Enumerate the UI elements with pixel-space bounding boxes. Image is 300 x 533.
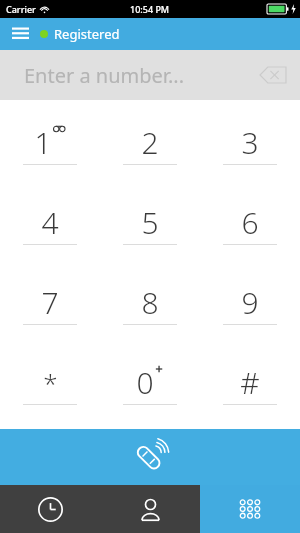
staticText: 8 bbox=[141, 282, 159, 322]
staticText: 10:54 PM bbox=[130, 3, 170, 15]
button[interactable]: Recents bbox=[0, 485, 100, 533]
button[interactable]: 9 bbox=[200, 263, 300, 343]
button[interactable]: Backspace bbox=[256, 58, 290, 92]
button[interactable]: * bbox=[0, 343, 100, 423]
button[interactable]: 5 bbox=[100, 183, 200, 263]
staticText: 3 bbox=[241, 122, 259, 162]
staticText: 9 bbox=[241, 282, 259, 322]
button[interactable]: 4 bbox=[0, 183, 100, 263]
staticText: # bbox=[240, 362, 260, 402]
staticText: * bbox=[43, 365, 58, 400]
button[interactable]: 0 bbox=[100, 343, 200, 423]
staticText: Carrier bbox=[6, 3, 36, 15]
button[interactable]: Menu bbox=[6, 20, 34, 48]
button[interactable]: 6 bbox=[200, 183, 300, 263]
staticText: 0 bbox=[136, 362, 154, 402]
button[interactable]: 7 bbox=[0, 263, 100, 343]
button[interactable]: Call bbox=[0, 429, 300, 485]
staticText: 6 bbox=[241, 202, 259, 242]
button[interactable]: 8 bbox=[100, 263, 200, 343]
staticText: Enter a number... bbox=[24, 62, 184, 89]
staticText: 1 bbox=[34, 122, 52, 162]
staticText: Registered bbox=[54, 25, 120, 43]
staticText: 2 bbox=[141, 122, 159, 162]
staticText: 4 bbox=[41, 202, 59, 242]
staticText: 7 bbox=[41, 282, 59, 322]
button[interactable]: Contacts bbox=[100, 485, 200, 533]
staticText: 5 bbox=[141, 202, 159, 242]
button[interactable]: 1 bbox=[0, 104, 100, 183]
button[interactable]: 3 bbox=[200, 104, 300, 183]
button[interactable]: Enter a number... bbox=[0, 50, 300, 100]
button[interactable]: 2 bbox=[100, 104, 200, 183]
button[interactable]: Keypad bbox=[200, 485, 300, 533]
button[interactable]: # bbox=[200, 343, 300, 423]
